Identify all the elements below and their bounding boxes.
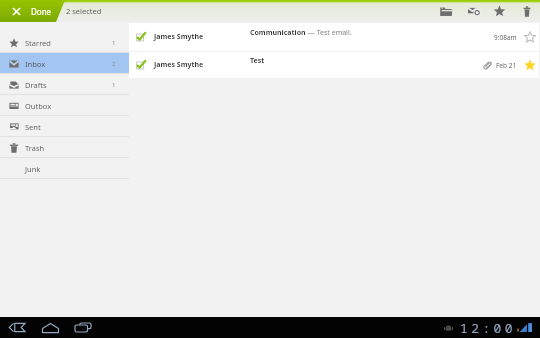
staticText: Trash: [25, 143, 45, 153]
button[interactable]: Move to folder: [432, 0, 459, 22]
button[interactable]: Trash: [0, 137, 129, 158]
staticText: 2 selected: [66, 6, 102, 16]
button[interactable]: Star: [522, 29, 538, 45]
staticText: James Smythe: [154, 60, 204, 70]
staticText: Feb 21: [496, 61, 517, 70]
staticText: 1: [112, 39, 116, 47]
button[interactable]: Back: [6, 317, 28, 338]
button[interactable]: Inbox: [0, 53, 129, 74]
staticText: — Test email.: [306, 28, 352, 38]
staticText: Drafts: [25, 80, 47, 90]
button[interactable]: Star: [486, 0, 513, 22]
button[interactable]: Delete: [513, 0, 540, 22]
button[interactable]: Outbox: [0, 95, 129, 116]
button[interactable]: Mark unread: [459, 0, 486, 22]
button[interactable]: Drafts: [0, 74, 129, 95]
button[interactable]: Starred: [0, 32, 129, 53]
button[interactable]: Home: [39, 317, 61, 338]
button[interactable]: James Smythe: [129, 52, 539, 78]
button[interactable]: Recents: [72, 317, 94, 338]
staticText: Starred: [25, 38, 51, 48]
button[interactable]: Star: [522, 57, 538, 73]
staticText: 9:08am: [494, 33, 517, 42]
staticText: James Smythe: [154, 32, 204, 42]
staticText: Done: [31, 6, 52, 17]
button[interactable]: Done: [0, 0, 62, 22]
staticText: Test: [250, 56, 265, 66]
staticText: 12:00: [460, 319, 517, 337]
staticText: Outbox: [25, 101, 52, 111]
staticText: 2: [112, 60, 116, 68]
staticText: Sent: [25, 122, 41, 132]
button[interactable]: James Smythe: [129, 23, 539, 51]
staticText: Inbox: [25, 59, 46, 69]
button[interactable]: Sent: [0, 116, 129, 137]
staticText: Communication: [250, 28, 306, 38]
staticText: Junk: [25, 164, 41, 174]
button[interactable]: Junk: [0, 158, 129, 179]
staticText: 1: [112, 81, 116, 89]
